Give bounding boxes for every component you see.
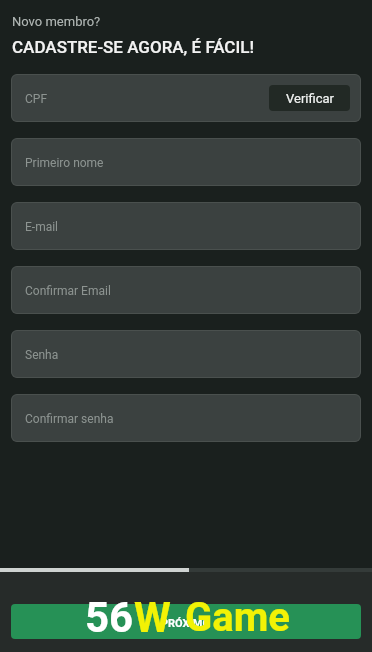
staticText: Primeiro nome <box>25 156 104 170</box>
button[interactable]: CPF <box>11 74 361 122</box>
button[interactable]: Senha <box>11 330 361 378</box>
staticText: CADASTRE-SE AGORA, É FÁCIL! <box>12 37 254 57</box>
button[interactable]: Primeiro nome <box>11 138 361 186</box>
button[interactable]: Confirmar senha <box>11 394 361 442</box>
button[interactable]: Verificar <box>269 85 350 111</box>
staticText: Confirmar Email <box>25 284 111 298</box>
staticText: E-mail <box>25 220 59 234</box>
staticText: 56 <box>85 593 134 642</box>
staticText: CPF <box>25 92 48 106</box>
staticText: W <box>134 593 171 642</box>
staticText: Game <box>185 594 290 641</box>
staticText: Confirmar senha <box>25 412 114 426</box>
button[interactable]: E-mail <box>11 202 361 250</box>
button[interactable]: PRÓXIMO <box>11 604 361 639</box>
button[interactable]: Confirmar Email <box>11 266 361 314</box>
staticText: PRÓXIMO <box>161 617 211 630</box>
staticText: Senha <box>25 348 59 362</box>
staticText: Novo membro? <box>12 14 101 29</box>
staticText: Verificar <box>286 91 334 106</box>
